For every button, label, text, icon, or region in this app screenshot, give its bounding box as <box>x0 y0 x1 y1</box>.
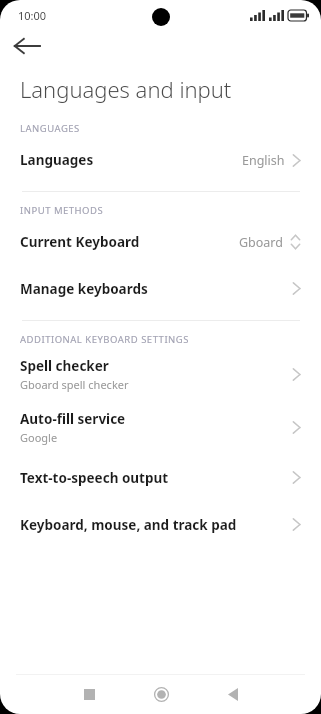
staticText: INPUT METHODS <box>20 204 104 217</box>
staticText: LANGUAGES <box>20 122 80 135</box>
staticText: Gboard spell checker <box>20 377 129 392</box>
button[interactable]: Keyboard, mouse, and track pad <box>0 501 321 548</box>
staticText: Spell checker <box>20 357 109 375</box>
staticText: Gboard <box>239 234 283 251</box>
button[interactable]: Current Keyboard <box>0 219 321 265</box>
staticText: Keyboard, mouse, and track pad <box>20 516 237 534</box>
staticText: Text-to-speech output <box>20 469 169 487</box>
staticText: Languages and input <box>20 74 232 104</box>
button[interactable]: Recent apps <box>53 675 125 714</box>
staticText: Manage keyboards <box>20 280 148 298</box>
button[interactable]: Home <box>125 675 197 714</box>
staticText: English <box>242 152 285 169</box>
staticText: Languages <box>20 151 94 169</box>
button[interactable]: Back <box>197 675 269 714</box>
staticText: Current Keyboard <box>20 233 140 251</box>
staticText: ADDITIONAL KEYBOARD SETTINGS <box>20 333 189 346</box>
staticText: Google <box>20 430 58 445</box>
button[interactable]: Languages <box>0 137 321 183</box>
button[interactable]: Text-to-speech output <box>0 454 321 501</box>
staticText: 10:00 <box>18 8 47 23</box>
button[interactable]: Auto-fill service <box>0 400 321 454</box>
button[interactable]: Back <box>0 30 54 62</box>
button[interactable]: Spell checker <box>0 348 321 400</box>
button[interactable]: Manage keyboards <box>0 265 321 312</box>
staticText: Auto-fill service <box>20 410 126 428</box>
